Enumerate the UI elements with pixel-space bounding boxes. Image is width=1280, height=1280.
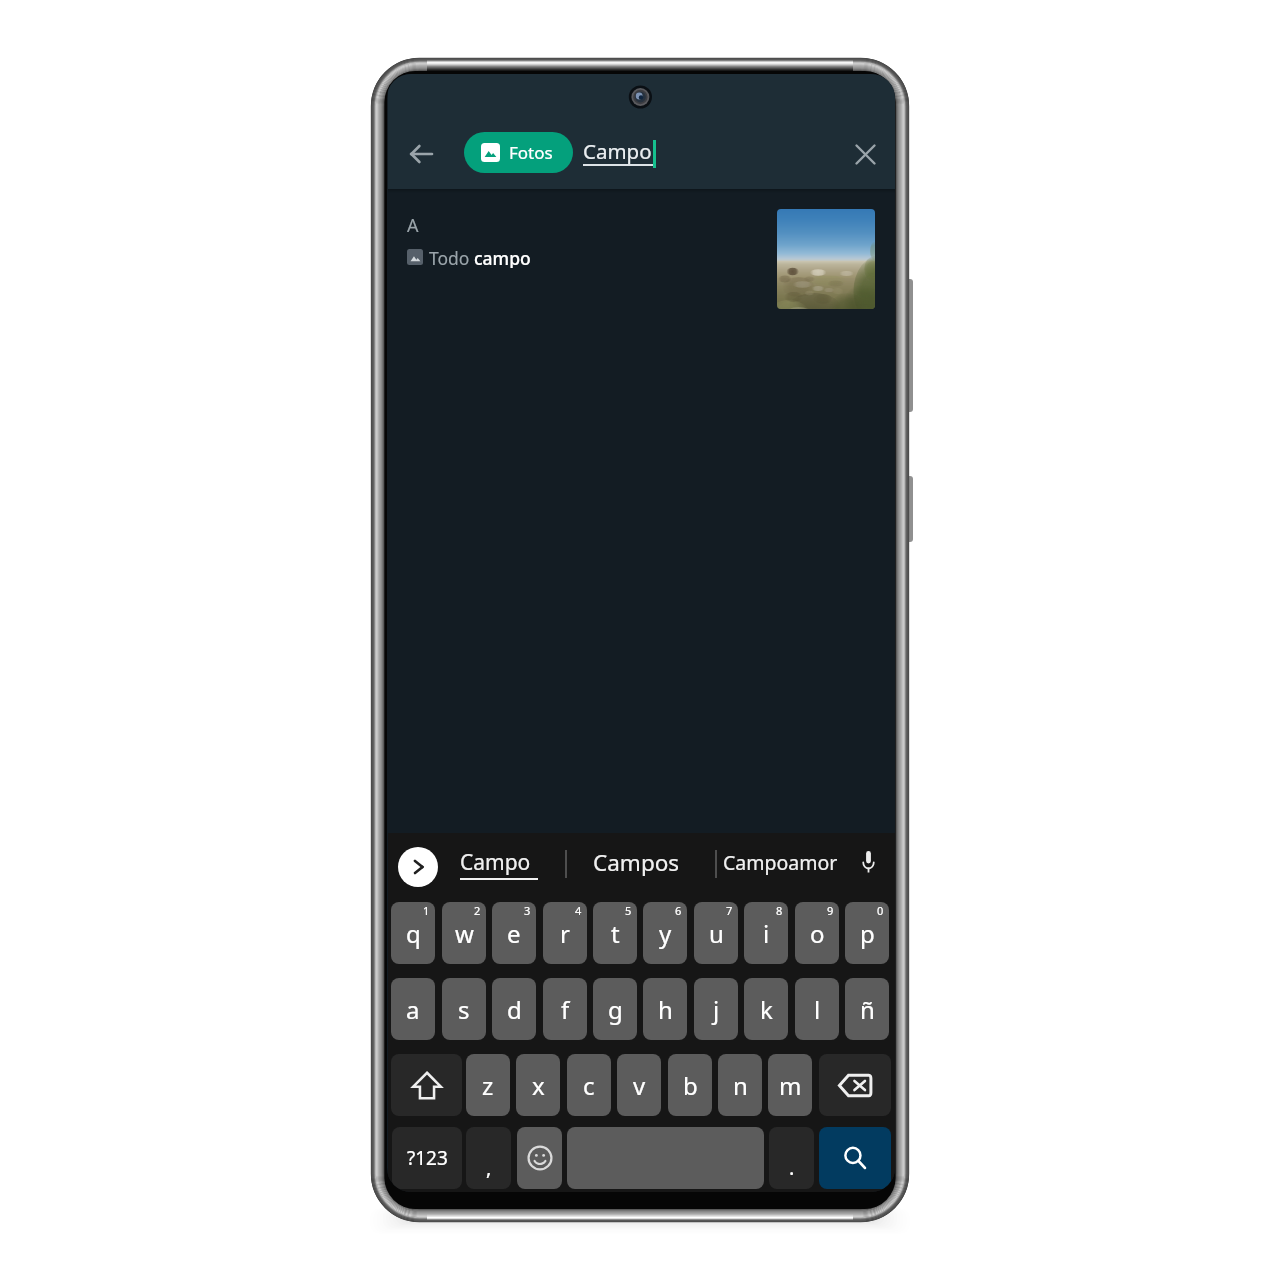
button[interactable]: Campoamor [717, 833, 849, 895]
staticText: w [455, 917, 474, 950]
staticText: Campos [593, 847, 680, 878]
staticText: Campo [460, 848, 531, 877]
button[interactable]: Campo [443, 833, 565, 895]
button[interactable]: Photo [777, 209, 875, 309]
button[interactable]: k [744, 978, 788, 1040]
staticText: 3 [524, 903, 531, 918]
button[interactable]: Voice input [856, 851, 881, 876]
button[interactable]: q [391, 902, 435, 964]
button[interactable]: Todo [407, 246, 531, 268]
staticText: q [406, 917, 421, 950]
button[interactable]: v [617, 1054, 661, 1116]
button[interactable]: b [668, 1054, 712, 1116]
staticText: Campoamor [723, 849, 838, 876]
staticText: d [507, 993, 522, 1026]
staticText: t [611, 917, 620, 950]
staticText: Todo [429, 246, 474, 268]
staticText: v [633, 1069, 646, 1102]
staticText: b [683, 1069, 698, 1102]
staticText: a [406, 993, 420, 1026]
button[interactable]: x [516, 1054, 560, 1116]
staticText: 8 [776, 903, 783, 918]
staticText: j [713, 993, 720, 1026]
staticText: 2 [474, 903, 481, 918]
staticText: 5 [625, 903, 632, 918]
button[interactable]: i [744, 902, 788, 964]
staticText: ?123 [407, 1145, 448, 1171]
staticText: , [486, 1154, 492, 1181]
staticText: z [482, 1069, 494, 1102]
button[interactable]: s [442, 978, 486, 1040]
staticText: k [760, 993, 773, 1026]
staticText: 0 [877, 903, 884, 918]
staticText: 4 [575, 903, 582, 918]
button[interactable]: Expand suggestions [398, 847, 438, 887]
button[interactable]: Space [567, 1127, 764, 1189]
button[interactable]: . [769, 1127, 814, 1189]
staticText: A [407, 213, 419, 238]
staticText: e [507, 917, 521, 950]
staticText: 7 [726, 903, 733, 918]
staticText: x [532, 1069, 545, 1102]
staticText: r [560, 917, 570, 950]
staticText: n [733, 1069, 748, 1102]
staticText: 6 [675, 903, 682, 918]
button[interactable]: h [643, 978, 687, 1040]
button[interactable]: Backspace [819, 1054, 891, 1116]
staticText: f [561, 993, 570, 1026]
staticText: u [709, 917, 724, 950]
staticText: Campo [583, 137, 652, 165]
staticText: m [779, 1069, 802, 1102]
button[interactable]: Shift [391, 1054, 462, 1116]
button[interactable]: n [718, 1054, 762, 1116]
button[interactable]: , [466, 1127, 511, 1189]
staticText: 9 [827, 903, 834, 918]
staticText: h [658, 993, 673, 1026]
button[interactable]: u [694, 902, 738, 964]
button[interactable]: g [593, 978, 637, 1040]
staticText: campo [474, 246, 531, 268]
button[interactable]: y [643, 902, 687, 964]
staticText: c [583, 1069, 595, 1102]
button[interactable]: p [845, 902, 889, 964]
button[interactable]: Close [853, 142, 877, 166]
button[interactable]: f [543, 978, 587, 1040]
button[interactable]: o [795, 902, 839, 964]
button[interactable]: ñ [845, 978, 889, 1040]
button[interactable]: j [694, 978, 738, 1040]
staticText: p [860, 917, 875, 950]
button[interactable]: ?123 [392, 1127, 462, 1189]
button[interactable]: z [466, 1054, 510, 1116]
button[interactable]: c [567, 1054, 611, 1116]
staticText: i [763, 917, 770, 950]
staticText: y [659, 917, 672, 950]
staticText: o [810, 917, 825, 950]
staticText: ñ [860, 993, 875, 1026]
staticText: l [814, 993, 821, 1026]
button[interactable]: Fotos [464, 132, 573, 173]
button[interactable]: w [442, 902, 486, 964]
staticText: g [608, 993, 623, 1026]
button[interactable]: m [768, 1054, 812, 1116]
staticText: s [458, 993, 470, 1026]
button[interactable]: Emoji [517, 1127, 562, 1189]
button[interactable]: d [492, 978, 536, 1040]
staticText: Fotos [509, 141, 553, 164]
button[interactable]: t [593, 902, 637, 964]
button[interactable]: r [543, 902, 587, 964]
button[interactable]: e [492, 902, 536, 964]
button[interactable]: Search [819, 1127, 891, 1189]
button[interactable]: Campos [567, 833, 715, 895]
button[interactable]: l [795, 978, 839, 1040]
staticText: . [789, 1154, 795, 1181]
staticText: 1 [423, 903, 430, 918]
button[interactable]: Back [408, 141, 434, 167]
button[interactable]: a [391, 978, 435, 1040]
